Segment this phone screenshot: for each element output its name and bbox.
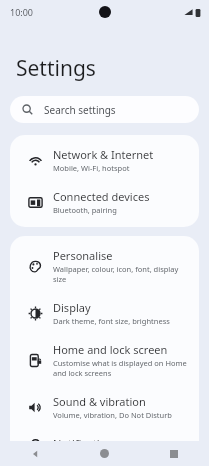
button[interactable]: Recent apps [139, 441, 209, 466]
staticText: Settings [16, 54, 96, 83]
staticText: Volume, vibration, Do Not Disturb [53, 410, 172, 420]
staticText: Customise what is displayed on Home and … [53, 358, 187, 378]
staticText: Home and lock screen [53, 342, 168, 357]
staticText: Connected devices [53, 189, 150, 204]
button[interactable]: Personalise [10, 240, 199, 292]
button[interactable]: Home [69, 441, 139, 466]
staticText: Search settings [44, 103, 116, 117]
staticText: 10:00 [10, 6, 34, 18]
staticText: Personalise [53, 248, 113, 263]
button[interactable]: Home and lock screen [10, 334, 199, 386]
staticText: Notification history, conversations [53, 452, 174, 454]
button[interactable]: Network & Internet [10, 139, 199, 181]
staticText: Network & Internet [53, 147, 154, 162]
button[interactable]: Connected devices [10, 181, 199, 223]
staticText: Bluetooth, pairing [53, 205, 117, 215]
staticText: Wallpaper, colour, icon, font, display s… [53, 264, 187, 284]
button[interactable]: Sound & vibration [10, 386, 199, 428]
button[interactable]: Search settings [10, 96, 199, 123]
staticText: Display [53, 300, 91, 315]
staticText: Sound & vibration [53, 394, 146, 409]
staticText: Mobile, Wi-Fi, hotspot [53, 163, 130, 173]
staticText: Dark theme, font size, brightness [53, 316, 170, 326]
button[interactable]: Notifications [10, 428, 199, 462]
button[interactable]: Display [10, 292, 199, 334]
staticText: Notifications [53, 436, 119, 451]
button[interactable]: Back [0, 441, 69, 466]
